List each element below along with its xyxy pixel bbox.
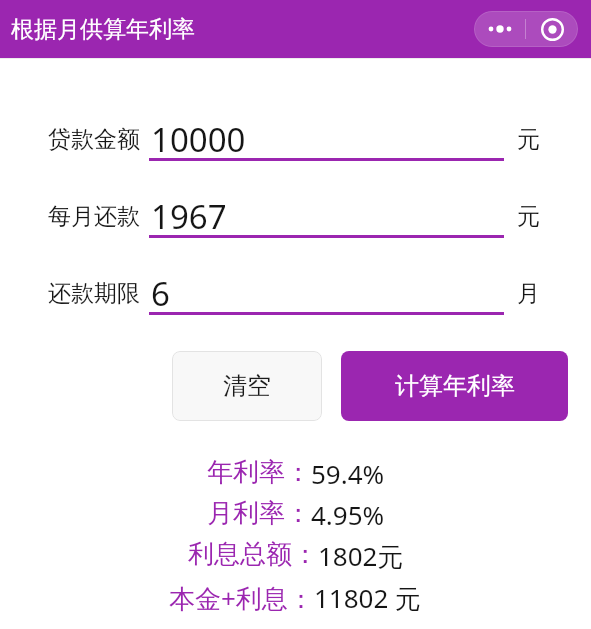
staticText: 10000: [151, 117, 246, 157]
staticText: 6: [151, 271, 170, 311]
staticText: 1967: [151, 194, 227, 234]
staticText: 贷款金额: [48, 125, 140, 154]
staticText: 计算年利率: [395, 371, 515, 401]
button[interactable]: 清空: [172, 351, 322, 421]
staticText: 利息总额：: [188, 538, 318, 571]
staticText: 4.95%: [311, 497, 385, 532]
button[interactable]: Close: [526, 11, 578, 47]
staticText: 元: [517, 125, 540, 154]
staticText: 还款期限: [48, 279, 140, 308]
staticText: 元: [517, 202, 540, 231]
button[interactable]: 计算年利率: [341, 351, 568, 421]
staticText: 清空: [223, 371, 271, 401]
staticText: 1802元: [318, 538, 404, 574]
staticText: 年利率：: [207, 456, 311, 489]
staticText: 本金+利息：: [169, 580, 314, 616]
staticText: 月利率：: [207, 497, 311, 530]
staticText: 11802 元: [314, 580, 422, 616]
staticText: 每月还款: [48, 202, 140, 231]
button[interactable]: More: [474, 11, 525, 47]
staticText: 根据月供算年利率: [11, 15, 195, 44]
staticText: 59.4%: [311, 456, 385, 491]
staticText: 月: [517, 279, 540, 308]
